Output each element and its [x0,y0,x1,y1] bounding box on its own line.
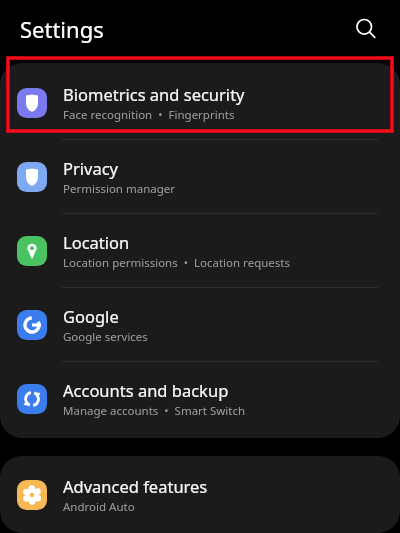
staticText: Biometrics and security [63,83,245,105]
staticText: Permission manager [63,181,176,197]
staticText: Location [63,231,130,253]
button[interactable]: Biometrics and security [0,66,400,139]
button[interactable]: Location [0,214,400,287]
staticText: Accounts and backup [63,379,229,401]
button[interactable]: Privacy [0,140,400,213]
staticText: Android Auto [63,499,135,515]
staticText: Google services [63,329,148,345]
button[interactable]: Accounts and backup [0,362,400,435]
button[interactable]: Advanced features [0,459,400,530]
staticText: Settings [20,14,104,44]
button[interactable]: Search [346,9,386,49]
button[interactable]: Google [0,288,400,361]
staticText: Face recognition • Fingerprints [63,107,235,123]
staticText: Google [63,305,119,327]
staticText: Privacy [63,157,119,179]
staticText: Manage accounts • Smart Switch [63,403,246,419]
staticText: Advanced features [63,475,208,497]
staticText: Location permissions • Location requests [63,255,290,271]
